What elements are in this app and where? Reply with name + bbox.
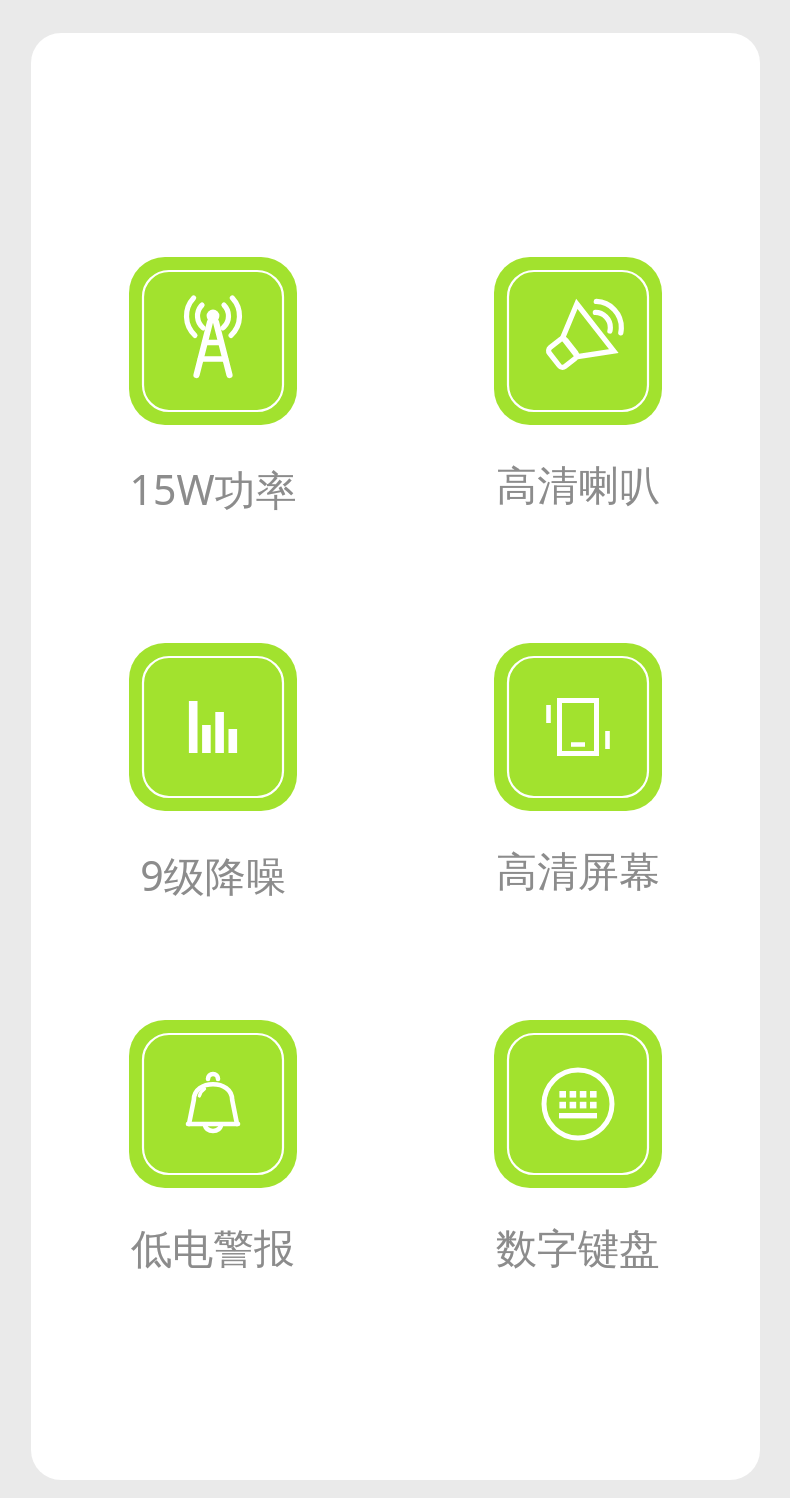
staticText: 低电警报 <box>131 1224 295 1276</box>
button[interactable]: 15W 功率 <box>98 257 328 517</box>
staticText: 15W功率 <box>129 461 297 517</box>
button[interactable]: 数字键盘 <box>463 1020 693 1276</box>
button[interactable]: 9级降噪 <box>98 643 328 903</box>
staticText: 高清喇叭 <box>496 461 660 513</box>
staticText: 高清屏幕 <box>496 847 660 899</box>
button[interactable]: 低电警报 <box>98 1020 328 1276</box>
staticText: 9级降噪 <box>140 847 287 903</box>
button[interactable]: 高清喇叭 <box>463 257 693 513</box>
staticText: 数字键盘 <box>496 1224 660 1276</box>
button[interactable]: 高清屏幕 <box>463 643 693 899</box>
